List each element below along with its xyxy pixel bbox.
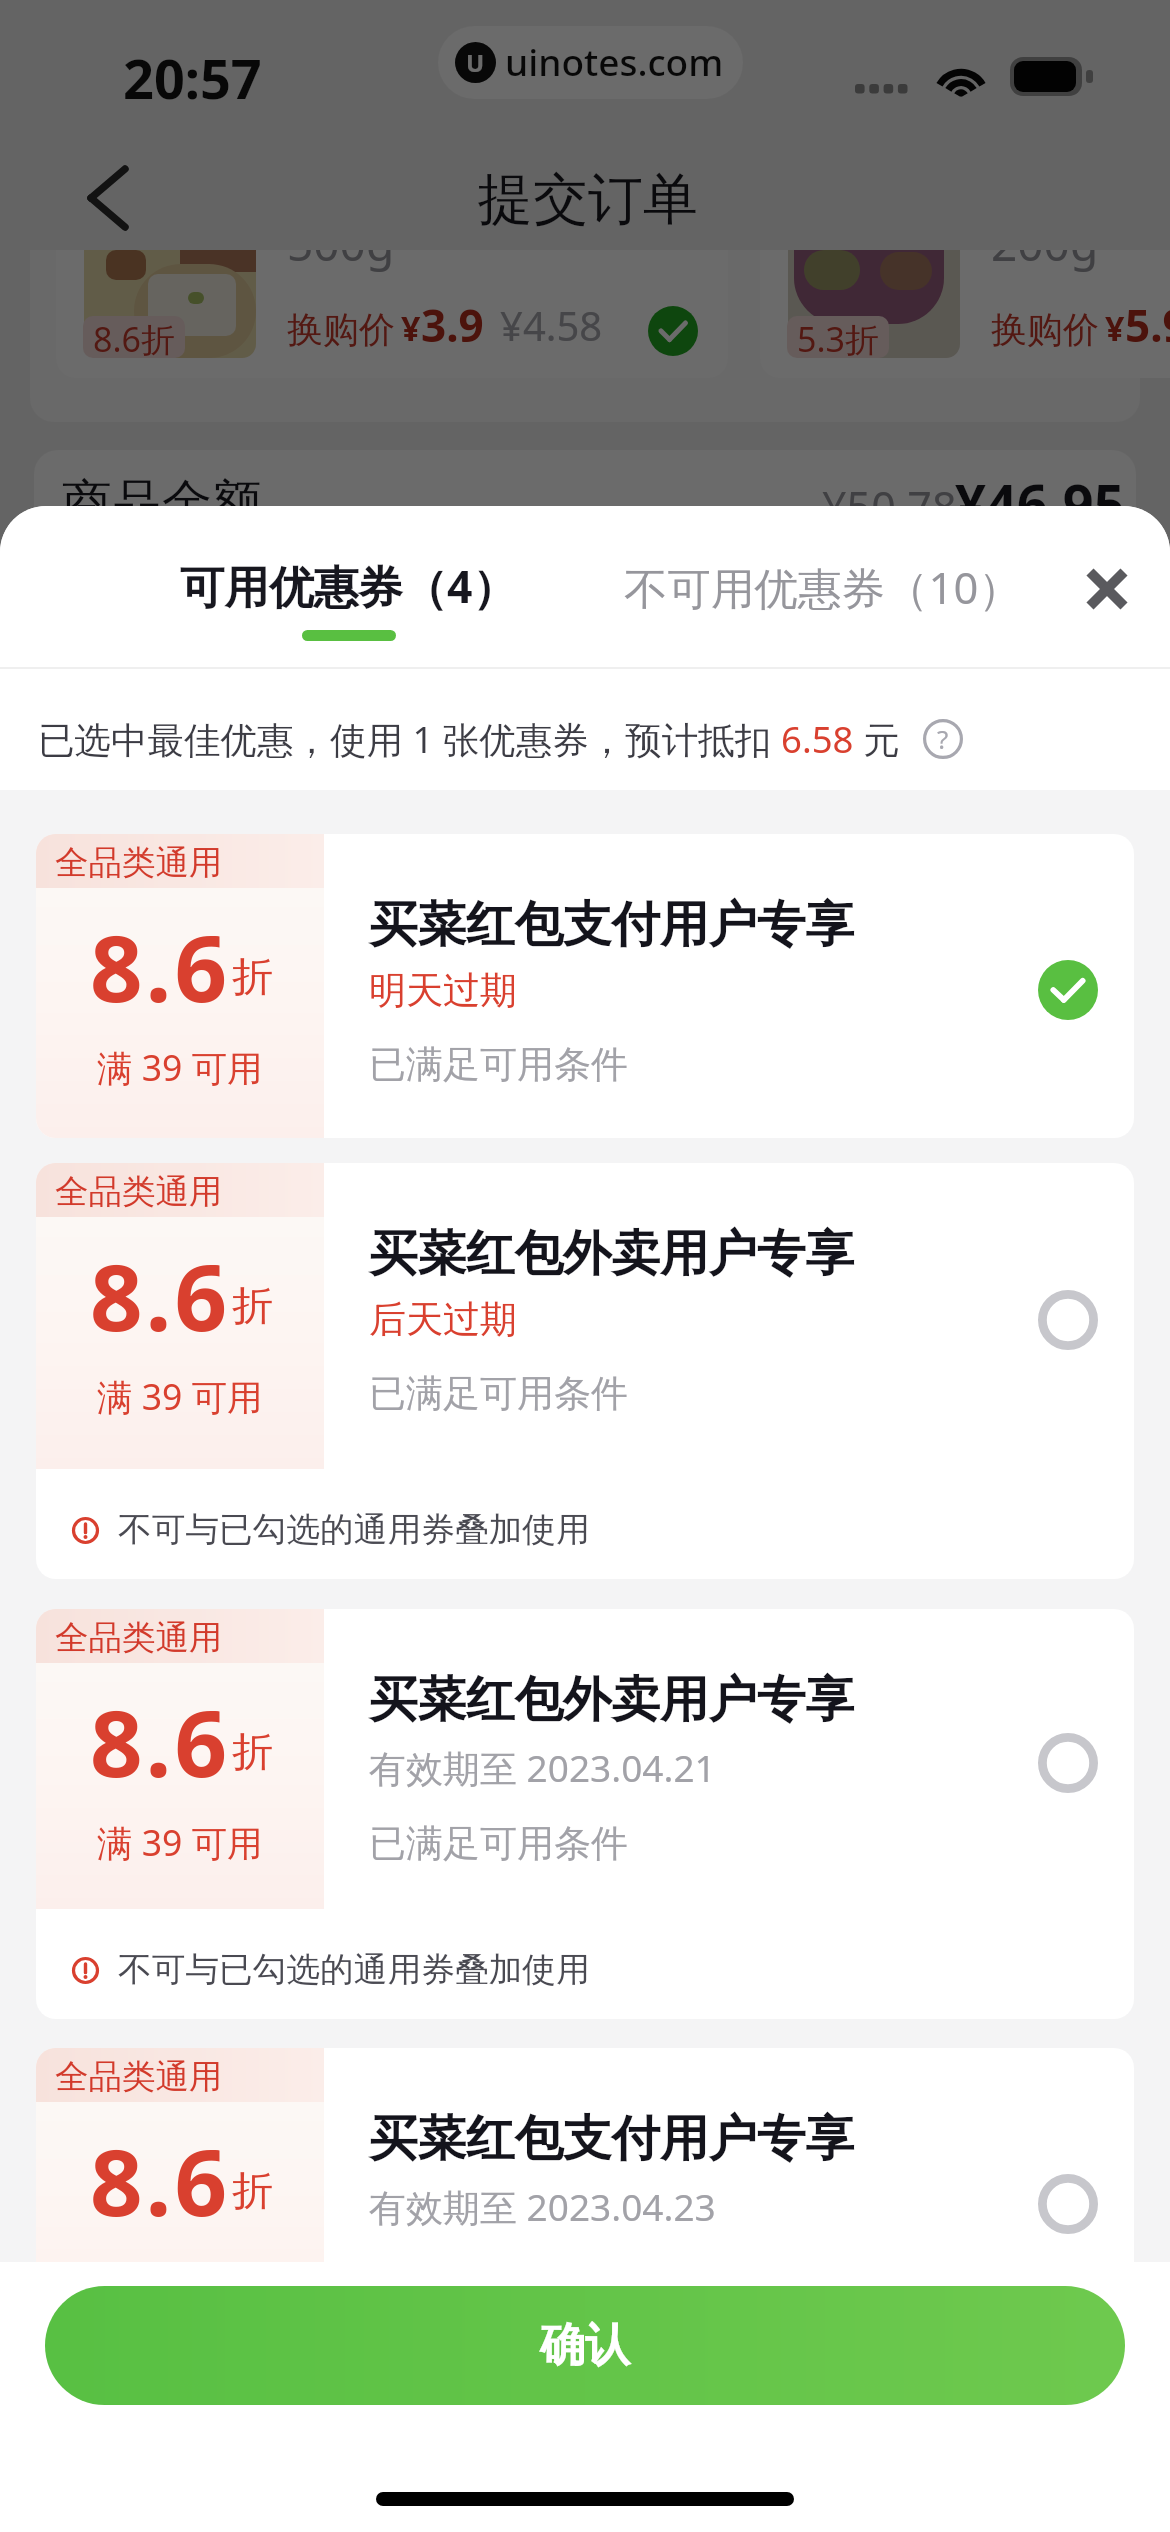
button[interactable]: Back xyxy=(60,150,156,246)
staticText: ¥46.95 xyxy=(955,466,1125,540)
staticText: 明天过期 xyxy=(369,967,517,1014)
button[interactable]: 确认 xyxy=(45,2286,1125,2405)
staticText: 8.6 xyxy=(90,2118,231,2243)
staticText: 3.9 xyxy=(421,295,484,355)
staticText: 满 39 可用 xyxy=(97,1043,263,1091)
staticText: 200g xyxy=(991,250,1099,275)
staticText: 换购价 xyxy=(287,307,395,352)
staticText: 全品类通用 xyxy=(55,1171,223,1213)
staticText: 全品类通用 xyxy=(55,2056,223,2098)
staticText: ? xyxy=(937,721,949,756)
button[interactable]: Close xyxy=(1067,549,1147,629)
staticText: 后天过期 xyxy=(369,1296,517,1343)
staticText: 不可与已勾选的通用券叠加使用 xyxy=(118,1509,590,1551)
staticText: 已满足可用条件 xyxy=(369,1041,628,1088)
staticText: 已选中最佳优惠，使用 1 张优惠券，预计抵扣 xyxy=(38,714,781,764)
button[interactable]: 全品类通用 xyxy=(36,1163,1134,1579)
staticText: ¥ xyxy=(401,305,421,351)
button[interactable]: Select coupon xyxy=(1038,1733,1098,1793)
staticText: U xyxy=(466,46,485,79)
button[interactable]: Select coupon xyxy=(1038,2174,1098,2234)
staticText: 满 39 可用 xyxy=(97,1372,263,1420)
staticText: 折 xyxy=(232,952,273,1004)
staticText: 买菜红包支付用户专享 xyxy=(369,2108,854,2169)
staticText: 8.6折 xyxy=(93,316,176,358)
staticText: 折 xyxy=(232,2166,273,2218)
button[interactable]: 全品类通用 xyxy=(36,2048,1134,2265)
staticText: ¥50.78 xyxy=(822,477,957,536)
button[interactable]: 可用优惠券（4） xyxy=(160,535,537,661)
staticText: ¥4.58 xyxy=(500,298,603,352)
staticText: 不可与已勾选的通用券叠加使用 xyxy=(118,1949,590,1991)
staticText: 确认 xyxy=(540,2317,630,2374)
staticText: 已满足可用条件 xyxy=(369,1820,628,1867)
staticText: 满 39 可用 xyxy=(97,1818,263,1866)
button[interactable]: 全品类通用 xyxy=(36,834,1134,1138)
staticText: 折 xyxy=(232,1281,273,1333)
staticText: 5.9 xyxy=(1125,295,1170,355)
staticText: ¥ xyxy=(1105,305,1125,351)
button[interactable]: Coupon selected xyxy=(1038,960,1098,1020)
staticText: 折 xyxy=(232,1727,273,1779)
button[interactable]: 不可用优惠券（10） xyxy=(604,537,1042,636)
staticText: 提交订单 xyxy=(478,165,698,234)
staticText: uinotes.com xyxy=(505,36,724,86)
button[interactable]: 全品类通用 xyxy=(36,1609,1134,2019)
staticText: 买菜红包支付用户专享 xyxy=(369,894,854,955)
staticText: 全品类通用 xyxy=(55,842,223,884)
staticText: 6.58 xyxy=(781,714,854,764)
staticText: 8.6 xyxy=(90,904,231,1029)
staticText: 满 39 可用 xyxy=(97,2257,263,2265)
staticText: 有效期至 2023.04.23 xyxy=(369,2181,716,2232)
staticText: 买菜红包外卖用户专享 xyxy=(369,1669,854,1730)
staticText: 商品金额 xyxy=(62,472,262,535)
staticText: 8.6 xyxy=(90,1233,231,1358)
staticText: 换购价 xyxy=(991,307,1099,352)
staticText: 20:57 xyxy=(123,41,262,115)
button[interactable]: Help xyxy=(923,719,963,759)
staticText: 全品类通用 xyxy=(55,1617,223,1659)
staticText: 8.6 xyxy=(90,1679,231,1804)
staticText: 元 xyxy=(854,714,900,764)
staticText: 500g xyxy=(287,250,395,275)
staticText: 不可用优惠券（10） xyxy=(624,557,1022,616)
staticText: 5.3折 xyxy=(797,316,880,358)
staticText: 有效期至 2023.04.21 xyxy=(369,1742,716,1793)
staticText: 已满足可用条件 xyxy=(369,1370,628,1417)
button[interactable]: Select coupon xyxy=(1038,1290,1098,1350)
staticText: 买菜红包外卖用户专享 xyxy=(369,1223,854,1284)
staticText: 可用优惠券（4） xyxy=(180,555,517,616)
